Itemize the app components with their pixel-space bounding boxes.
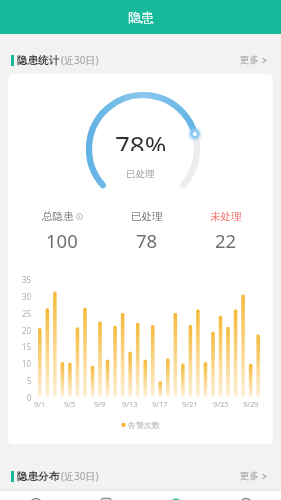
staticText: 已处理 <box>131 210 163 223</box>
staticText: 更多 <box>240 54 259 66</box>
staticText: 9/29 <box>243 399 259 409</box>
button[interactable]: 监控 <box>71 490 141 500</box>
button[interactable]: 隐患 <box>141 490 211 500</box>
staticText: 9/5 <box>64 399 76 409</box>
button[interactable]: 更多 <box>240 54 281 66</box>
staticText: 9/13 <box>122 399 138 409</box>
staticText: (近30日) <box>61 53 99 67</box>
staticText: 9/9 <box>94 399 106 409</box>
staticText: 10 <box>22 358 32 368</box>
staticText: 22 <box>215 228 237 253</box>
button[interactable]: 已处理 <box>106 210 188 253</box>
staticText: 100 <box>46 228 78 253</box>
staticText: 30 <box>22 291 32 301</box>
staticText: 更多 <box>240 470 259 482</box>
button[interactable]: 首页 <box>0 490 71 500</box>
staticText: 隐患分布 <box>17 470 59 483</box>
staticText: 0 <box>27 392 32 402</box>
staticText: 78% <box>115 127 167 151</box>
staticText: 告警次数 <box>128 420 160 430</box>
staticText: 35 <box>22 274 32 284</box>
button[interactable]: 我的 <box>211 490 281 500</box>
staticText: 9/1 <box>34 399 46 409</box>
staticText: 5 <box>27 375 32 385</box>
staticText: (近30日) <box>61 469 99 483</box>
staticText: 总隐患 <box>42 210 74 223</box>
staticText: 9/21 <box>182 399 198 409</box>
button[interactable]: 未处理 <box>185 210 267 253</box>
staticText: 9/17 <box>152 399 168 409</box>
staticText: 20 <box>22 325 32 335</box>
staticText: 78 <box>136 228 158 253</box>
button[interactable]: 总隐患 <box>21 210 103 253</box>
staticText: 9/25 <box>213 399 229 409</box>
staticText: 隐患 <box>128 9 154 25</box>
staticText: 已处理 <box>126 168 155 180</box>
staticText: 15 <box>22 341 32 351</box>
staticText: 25 <box>22 308 32 318</box>
staticText: 隐患统计 <box>17 54 59 67</box>
staticText: 未处理 <box>210 210 242 223</box>
button[interactable]: 更多 <box>240 470 281 482</box>
